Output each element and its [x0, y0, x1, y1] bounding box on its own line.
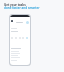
staticText: done faster and smarter [4, 6, 40, 10]
staticText: Get your tasks [4, 3, 26, 7]
